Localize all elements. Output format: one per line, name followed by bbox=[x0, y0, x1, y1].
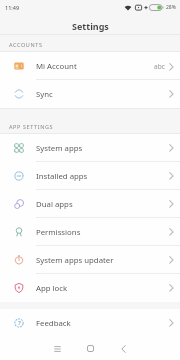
staticText: ACCOUNTS bbox=[9, 41, 43, 48]
button[interactable]: ? bbox=[0, 309, 180, 337]
staticText: Dual apps bbox=[36, 199, 73, 210]
button[interactable]: Permissions bbox=[0, 218, 180, 246]
staticText: Permissions bbox=[36, 227, 81, 238]
staticText: System apps bbox=[36, 143, 83, 154]
staticText: App lock bbox=[36, 283, 68, 294]
staticText: abc bbox=[154, 62, 165, 71]
staticText: ? bbox=[18, 319, 21, 327]
button[interactable]: System apps bbox=[0, 134, 180, 162]
button[interactable] bbox=[74, 337, 107, 360]
staticText: 11:49 bbox=[5, 4, 20, 11]
staticText: APP SETTINGS bbox=[9, 123, 54, 130]
staticText: 28% bbox=[166, 4, 176, 11]
button[interactable]: Installed apps bbox=[0, 162, 180, 190]
button[interactable] bbox=[41, 337, 74, 360]
button[interactable]: Dual apps bbox=[0, 190, 180, 218]
staticText: Feedback bbox=[36, 318, 71, 329]
staticText: Installed apps bbox=[36, 171, 88, 182]
staticText: Sync bbox=[36, 89, 53, 100]
button[interactable]: Sync bbox=[0, 80, 180, 108]
staticText: Mi Account bbox=[36, 61, 77, 72]
button[interactable] bbox=[107, 337, 140, 360]
button[interactable]: Mi Account bbox=[0, 52, 180, 80]
staticText: System apps updater bbox=[36, 255, 114, 266]
button[interactable]: App lock bbox=[0, 274, 180, 302]
button[interactable]: System apps updater bbox=[0, 246, 180, 274]
staticText: Settings bbox=[72, 20, 109, 32]
